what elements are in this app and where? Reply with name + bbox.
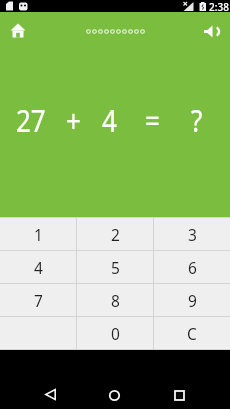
- staticText: 4: [102, 98, 117, 140]
- staticText: 5: [111, 257, 120, 278]
- button[interactable]: 9: [154, 284, 230, 316]
- button[interactable]: 1: [0, 218, 76, 250]
- button[interactable]: 2: [77, 218, 153, 250]
- button[interactable]: [6, 19, 30, 43]
- staticText: 2:38: [209, 0, 229, 12]
- staticText: 2: [111, 224, 120, 245]
- button[interactable]: 8: [77, 284, 153, 316]
- button[interactable]: C: [154, 317, 230, 349]
- staticText: +: [66, 98, 81, 140]
- staticText: 0: [111, 323, 120, 344]
- button[interactable]: [165, 381, 194, 409]
- staticText: 6: [188, 257, 197, 278]
- staticText: =: [145, 98, 160, 140]
- button[interactable]: 5: [77, 251, 153, 283]
- button[interactable]: 7: [0, 284, 76, 316]
- staticText: 7: [34, 290, 43, 311]
- staticText: 9: [188, 290, 197, 311]
- button[interactable]: 6: [154, 251, 230, 283]
- button[interactable]: [198, 20, 224, 46]
- staticText: 8: [111, 290, 120, 311]
- staticText: ?: [191, 98, 203, 140]
- staticText: 4: [34, 257, 43, 278]
- staticText: 1: [34, 224, 43, 245]
- button[interactable]: 4: [0, 251, 76, 283]
- button[interactable]: [100, 381, 129, 409]
- button[interactable]: 0: [77, 317, 153, 349]
- staticText: 27: [16, 98, 46, 140]
- staticText: C: [187, 323, 197, 344]
- staticText: 3: [188, 224, 197, 245]
- button[interactable]: [36, 380, 65, 409]
- button[interactable]: 3: [154, 218, 230, 250]
